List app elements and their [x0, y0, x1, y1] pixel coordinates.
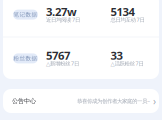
- staticText: 恭喜你成为创作者大家庭的一员~: [77, 97, 150, 105]
- staticText: ›: [153, 94, 156, 108]
- staticText: 33: [110, 48, 122, 63]
- staticText: △活跃粉丝 7日: [110, 60, 143, 67]
- button[interactable]: 公告中心: [3, 89, 159, 113]
- staticText: 公告中心: [12, 97, 36, 105]
- staticText: 5767: [46, 48, 70, 63]
- staticText: 笔记数据: [13, 11, 37, 18]
- staticText: △新增粉丝 7日: [46, 60, 79, 67]
- staticText: 近日均阅读 7日: [46, 16, 80, 23]
- staticText: 总日均互动 7日: [110, 16, 144, 23]
- staticText: 5134: [110, 4, 134, 19]
- staticText: 3.27w: [46, 4, 77, 19]
- staticText: 粉丝数据: [13, 55, 37, 62]
